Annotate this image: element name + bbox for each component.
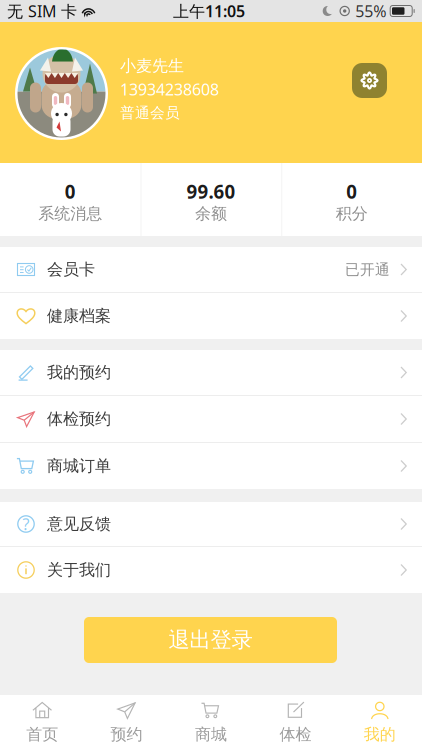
button[interactable]: ? bbox=[0, 502, 422, 546]
staticText: 商城订单 bbox=[47, 456, 111, 476]
button[interactable]: 体检预约 bbox=[0, 396, 422, 442]
staticText: 健康档案 bbox=[47, 306, 111, 326]
staticText: 我的预约 bbox=[47, 363, 111, 382]
staticText: 已开通 bbox=[345, 260, 390, 278]
staticText: 普通会员 bbox=[120, 104, 180, 122]
staticText: 13934238608 bbox=[120, 79, 219, 100]
staticText: 我的 bbox=[364, 725, 396, 744]
button[interactable]: 首页 bbox=[0, 695, 84, 750]
staticText: 预约 bbox=[111, 725, 143, 744]
button[interactable]: 健康档案 bbox=[0, 293, 422, 339]
staticText: 小麦先生 bbox=[120, 56, 184, 76]
button[interactable]: 退出登录 bbox=[84, 617, 337, 663]
staticText: 意见反馈 bbox=[47, 514, 111, 534]
staticText: 会员卡 bbox=[47, 260, 95, 279]
button[interactable]: 99.60 bbox=[141, 163, 281, 236]
staticText: 0 bbox=[65, 179, 76, 204]
staticText: 无 SIM 卡 bbox=[7, 0, 77, 22]
staticText: 首页 bbox=[26, 725, 58, 744]
staticText: 退出登录 bbox=[168, 627, 252, 653]
staticText: 上午11:05 bbox=[173, 0, 245, 22]
staticText: 0 bbox=[346, 179, 357, 204]
button[interactable]: 商城 bbox=[169, 695, 253, 750]
staticText: 积分 bbox=[336, 204, 368, 223]
staticText: 商城 bbox=[195, 725, 227, 744]
button[interactable]: 我的预约 bbox=[0, 350, 422, 395]
button[interactable]: Settings bbox=[352, 63, 387, 98]
button[interactable]: 会员卡 bbox=[0, 247, 422, 292]
staticText: 99.60 bbox=[186, 179, 235, 204]
button[interactable]: 0 bbox=[0, 163, 141, 236]
button[interactable]: 体检 bbox=[253, 695, 338, 750]
button[interactable]: 预约 bbox=[84, 695, 169, 750]
staticText: 余额 bbox=[195, 204, 227, 223]
button[interactable]: 商城订单 bbox=[0, 443, 422, 489]
staticText: 系统消息 bbox=[38, 204, 102, 223]
staticText: 55% bbox=[355, 0, 386, 22]
staticText: 体检预约 bbox=[47, 409, 111, 429]
staticText: 关于我们 bbox=[47, 560, 111, 580]
button[interactable]: 关于我们 bbox=[0, 547, 422, 593]
button[interactable]: 我的 bbox=[338, 695, 422, 750]
staticText: ? bbox=[22, 513, 29, 535]
staticText: 体检 bbox=[279, 725, 311, 744]
button[interactable]: 0 bbox=[281, 163, 422, 236]
